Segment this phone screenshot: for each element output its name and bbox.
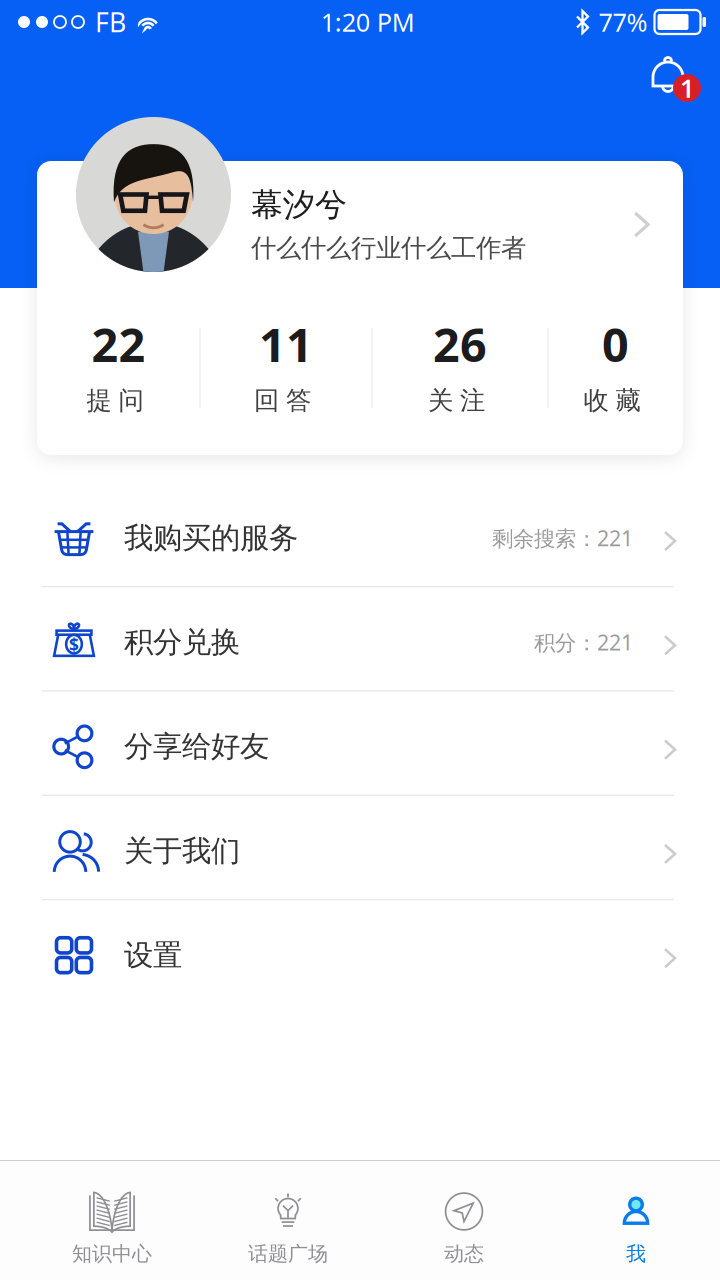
staticText: 11 <box>259 313 313 375</box>
button[interactable]: 知识中心 <box>24 1160 200 1280</box>
button[interactable]: 话题广场 <box>200 1160 376 1280</box>
staticText: 积分兑换 <box>124 624 240 660</box>
button[interactable]: 我购买的服务 <box>0 483 720 586</box>
staticText: 幕汐兮 <box>251 185 347 225</box>
staticText: $ <box>69 633 79 656</box>
staticText: 知识中心 <box>72 1241 152 1266</box>
staticText: 77% <box>598 5 647 39</box>
button[interactable]: Notifications <box>634 44 704 106</box>
staticText: 我购买的服务 <box>124 520 298 556</box>
button[interactable]: 幕汐兮 <box>37 161 683 288</box>
staticText: 提问 <box>86 385 143 416</box>
button[interactable]: 关于我们 <box>0 796 720 899</box>
button[interactable]: 我 <box>552 1160 720 1280</box>
button[interactable]: 分享给好友 <box>0 692 720 795</box>
staticText: 我 <box>626 1241 646 1266</box>
staticText: 回答 <box>254 385 311 416</box>
staticText: 分享给好友 <box>124 729 269 765</box>
staticText: 话题广场 <box>248 1241 328 1266</box>
staticText: 26 <box>433 313 487 375</box>
staticText: 关于我们 <box>124 833 240 869</box>
staticText: 剩余搜索：221 <box>492 524 633 552</box>
staticText: 设置 <box>124 937 182 973</box>
staticText: 什么什么行业什么工作者 <box>251 233 526 264</box>
staticText: 0 <box>602 313 629 375</box>
button[interactable]: $ <box>0 587 720 690</box>
staticText: 收藏 <box>583 385 640 416</box>
staticText: 动态 <box>444 1241 484 1266</box>
button[interactable]: 设置 <box>0 900 720 1003</box>
button[interactable]: 动态 <box>376 1160 552 1280</box>
staticText: FB <box>95 4 126 40</box>
staticText: 22 <box>91 313 145 375</box>
staticText: 积分：221 <box>534 628 633 656</box>
staticText: 关注 <box>428 385 485 416</box>
staticText: 1:20 PM <box>321 5 415 39</box>
staticText: 1 <box>680 71 694 105</box>
